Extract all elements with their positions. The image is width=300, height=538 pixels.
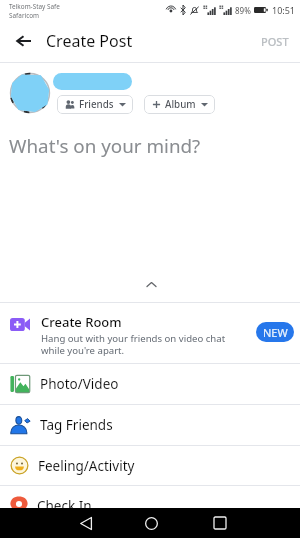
button[interactable]: Back	[0, 20, 46, 62]
staticText: Hang out with your friends on video chat…	[41, 332, 250, 357]
staticText: What's on your mind?	[9, 133, 201, 159]
button[interactable]: What's on your mind?	[0, 114, 300, 159]
staticText: Friends	[79, 98, 114, 111]
staticText: Check In	[37, 497, 92, 515]
staticText: 89%	[235, 5, 251, 16]
button[interactable]: Feeling/Activity	[0, 446, 300, 485]
staticText: Tag Friends	[40, 416, 113, 434]
staticText: Telkom-Stay Safe	[9, 2, 60, 11]
button[interactable]: Create Room	[0, 303, 300, 363]
button[interactable]: Recents	[196, 508, 241, 538]
button[interactable]: POST	[250, 26, 300, 57]
staticText: Album	[165, 98, 196, 111]
staticText: Safaricom	[9, 11, 40, 20]
button[interactable]: Friends	[57, 95, 133, 114]
button[interactable]: Collapse	[0, 272, 300, 302]
staticText: Create Post	[46, 30, 133, 52]
button[interactable]: Tag Friends	[0, 405, 300, 445]
staticText: POST	[261, 34, 289, 49]
button[interactable]: Back	[62, 508, 107, 538]
button[interactable]: Photo/Video	[0, 364, 300, 404]
button[interactable]: Check In	[0, 486, 300, 526]
staticText: Photo/Video	[40, 375, 119, 393]
staticText: NEW	[263, 325, 288, 340]
staticText: Create Room	[41, 313, 122, 331]
staticText: 10:51	[272, 4, 296, 16]
button[interactable]: NEW	[256, 322, 294, 342]
staticText: Feeling/Activity	[38, 457, 135, 475]
button[interactable]: Album	[144, 95, 215, 114]
button[interactable]: Home	[128, 508, 173, 538]
